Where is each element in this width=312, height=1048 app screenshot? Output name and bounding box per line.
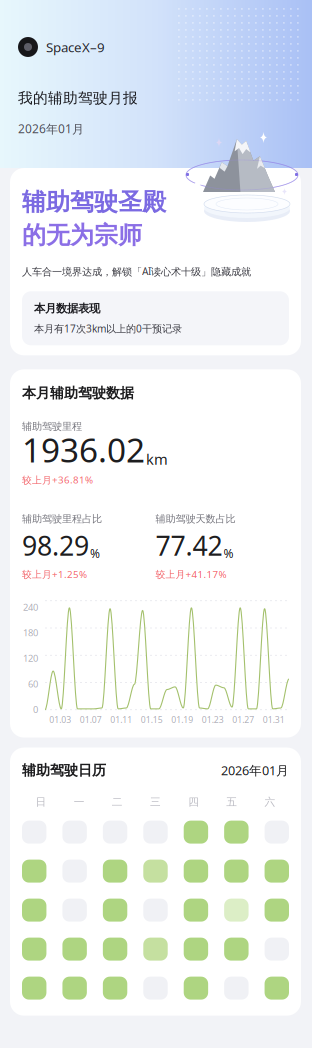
staticText: 01.31 (263, 714, 285, 725)
staticText: 较上月+1.25% (22, 567, 87, 581)
staticText: 本月数据表现 (34, 301, 100, 316)
staticText: % (90, 545, 100, 561)
staticText: 01.11 (110, 714, 132, 725)
staticText: 180 (23, 626, 38, 639)
staticText: 辅助驾驶圣殿 (22, 187, 166, 217)
staticText: 98.29 (22, 527, 89, 563)
staticText: 2026年01月 (18, 120, 84, 137)
staticText: 较上月+41.17% (155, 567, 226, 581)
staticText: 本月有17次3km以上的0干预记录 (34, 321, 182, 335)
staticText: 六 (264, 795, 275, 809)
staticText: 2026年01月 (221, 762, 289, 779)
staticText: 01.03 (49, 714, 71, 725)
staticText: 辅助驾驶里程占比 (22, 512, 102, 525)
staticText: 0 (33, 703, 38, 716)
staticText: SpaceX–9 (46, 38, 105, 56)
staticText: 01.15 (141, 714, 163, 725)
staticText: 辅助驾驶日历 (22, 761, 106, 779)
button[interactable]: SpaceX–9 (18, 37, 105, 57)
staticText: 120 (23, 652, 38, 665)
staticText: 60 (28, 677, 38, 690)
staticText: 的无为宗师 (22, 220, 142, 250)
staticText: 01.27 (232, 714, 254, 725)
staticText: 77.42 (155, 527, 222, 563)
staticText: 人车合一境界达成，解锁「AI读心术十级」隐藏成就 (22, 264, 251, 278)
staticText: 240 (23, 601, 38, 613)
staticText: 01.19 (171, 714, 193, 725)
staticText: 辅助驾驶里程 (22, 420, 82, 433)
staticText: % (223, 545, 233, 561)
staticText: 辅助驾驶天数占比 (155, 512, 235, 525)
staticText: 1936.02 (22, 427, 145, 472)
staticText: 四 (188, 795, 199, 809)
staticText: 本月辅助驾驶数据 (22, 384, 134, 402)
staticText: 五 (226, 795, 237, 809)
staticText: km (146, 449, 168, 469)
staticText: 三 (150, 795, 161, 809)
staticText: 我的辅助驾驶月报 (18, 89, 138, 107)
staticText: 较上月+36.81% (22, 473, 93, 486)
staticText: 01.07 (80, 714, 102, 725)
staticText: 一 (74, 795, 85, 809)
staticText: 二 (112, 795, 123, 809)
staticText: 01.23 (202, 714, 224, 725)
staticText: 日 (36, 795, 47, 809)
